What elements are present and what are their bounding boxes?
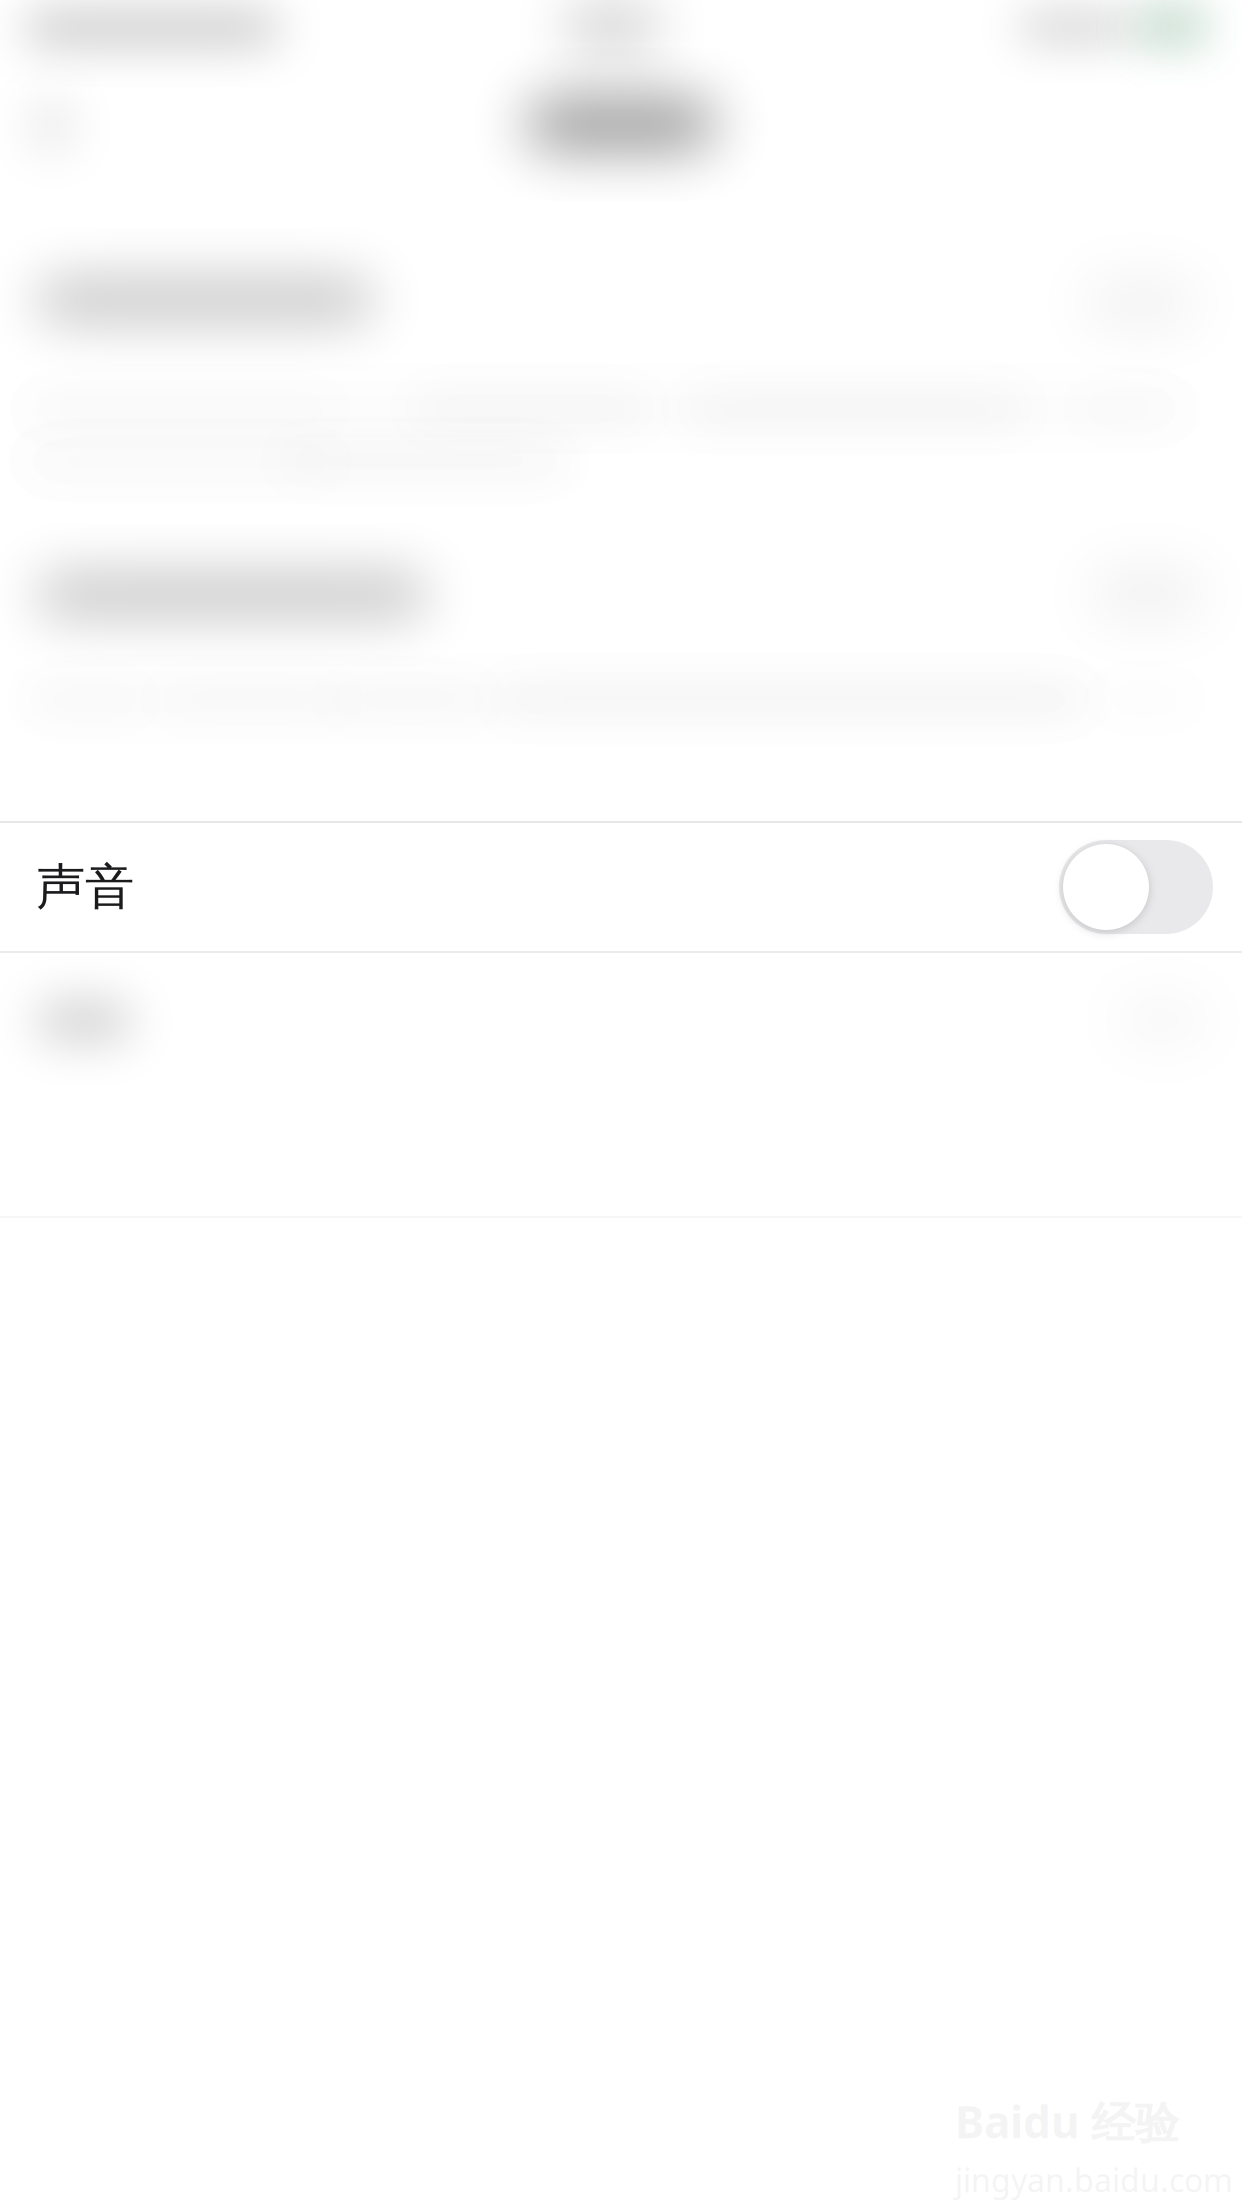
button[interactable] — [0, 180, 1242, 500]
button[interactable]: 声音 — [0, 823, 1242, 951]
button[interactable]: Back — [0, 58, 1242, 180]
button[interactable] — [0, 500, 1242, 821]
staticText: 声音 — [36, 857, 134, 917]
staticText: jingyan.baidu.com — [955, 2159, 1233, 2201]
staticText: Baidu 经验 — [955, 2092, 1179, 2151]
